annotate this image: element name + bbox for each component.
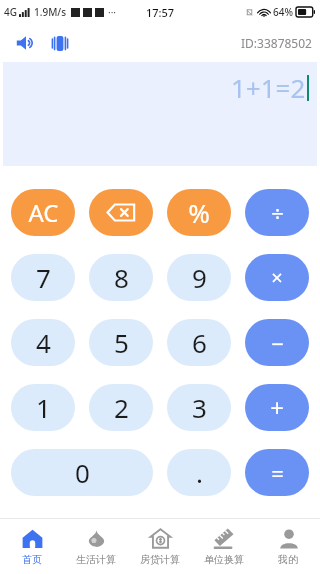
button[interactable]: 房贷计算 [128, 519, 192, 574]
button[interactable]: 8 [89, 254, 153, 301]
button[interactable]: 1 [11, 384, 75, 431]
button[interactable]: . [167, 449, 231, 496]
button[interactable]: Delete [89, 189, 153, 236]
button[interactable]: 4 [11, 319, 75, 366]
staticText: 4 [36, 325, 51, 360]
staticText: 1 [36, 390, 51, 425]
button[interactable]: 3 [167, 384, 231, 431]
button[interactable]: Vibrate [45, 28, 75, 58]
staticText: 17:57 [146, 5, 175, 20]
staticText: 我的 [278, 553, 298, 566]
staticText: 1+1=2 [231, 70, 306, 105]
button[interactable]: × [245, 254, 309, 301]
staticText: 9 [192, 260, 207, 295]
button[interactable]: 9 [167, 254, 231, 301]
staticText: × [271, 264, 283, 291]
button[interactable]: Sound [11, 28, 41, 58]
staticText: AC [28, 196, 59, 229]
staticText: 8 [114, 260, 129, 295]
button[interactable]: 7 [11, 254, 75, 301]
button[interactable]: 单位换算 [192, 519, 256, 574]
staticText: 1.9M/s [34, 5, 67, 19]
button[interactable]: 5 [89, 319, 153, 366]
staticText: 首页 [22, 553, 42, 566]
button[interactable]: − [245, 319, 309, 366]
button[interactable]: = [245, 449, 309, 496]
staticText: 3 [192, 390, 207, 425]
staticText: = [271, 458, 284, 488]
staticText: 房贷计算 [140, 553, 180, 566]
staticText: 6 [192, 325, 207, 360]
staticText: 0 [75, 455, 90, 490]
staticText: 4G [4, 5, 17, 19]
button[interactable]: 首页 [0, 519, 64, 574]
staticText: 生活计算 [76, 553, 116, 566]
staticText: . [196, 455, 203, 490]
staticText: + [270, 391, 284, 424]
staticText: 2 [114, 390, 129, 425]
button[interactable]: 0 [11, 449, 153, 496]
button[interactable]: AC [11, 189, 75, 236]
button[interactable]: ÷ [245, 189, 309, 236]
button[interactable]: + [245, 384, 309, 431]
staticText: % [188, 195, 210, 230]
staticText: 5 [114, 325, 129, 360]
staticText: 64% [273, 5, 293, 19]
staticText: ··· [108, 5, 117, 19]
button[interactable]: 我的 [256, 519, 320, 574]
staticText: 7 [36, 260, 51, 295]
staticText: ÷ [271, 198, 284, 228]
staticText: − [271, 328, 284, 358]
staticText: ID:33878502 [241, 35, 312, 51]
button[interactable]: 2 [89, 384, 153, 431]
button[interactable]: 生活计算 [64, 519, 128, 574]
button[interactable]: 6 [167, 319, 231, 366]
button[interactable]: % [167, 189, 231, 236]
staticText: 单位换算 [204, 553, 244, 566]
